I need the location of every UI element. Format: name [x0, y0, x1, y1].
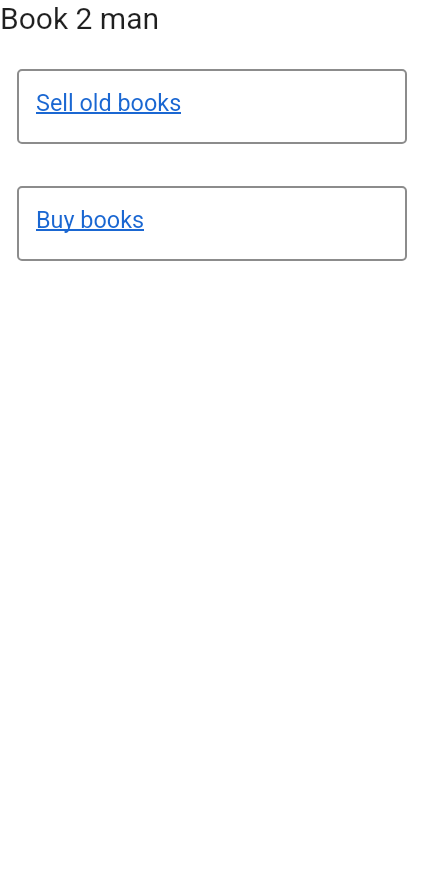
staticText: Sell old books	[36, 89, 182, 116]
button[interactable]: Sell old books	[17, 69, 407, 144]
button[interactable]: Buy books	[17, 186, 407, 261]
staticText: Buy books	[36, 206, 145, 233]
staticText: Book 2 man	[0, 1, 160, 36]
